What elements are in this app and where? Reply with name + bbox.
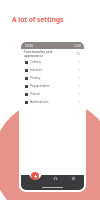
button[interactable]: Internet — [21, 66, 84, 74]
button[interactable]: Cellular — [21, 58, 84, 66]
staticText: LTE 4G — [25, 44, 34, 48]
button[interactable]: Settings — [70, 175, 76, 181]
button[interactable]: Notifications — [21, 98, 84, 106]
staticText: Functionality and appearance — [24, 49, 53, 58]
button[interactable]: Search — [76, 51, 81, 56]
button[interactable]: Add — [31, 172, 39, 180]
staticText: Internet — [30, 68, 42, 72]
staticText: A lot of settings — [12, 15, 64, 24]
staticText: Notifications — [30, 100, 49, 104]
staticText: Virtual — [30, 92, 40, 96]
button[interactable]: Headphones — [52, 175, 58, 181]
button[interactable]: Popup letters — [21, 82, 84, 90]
button[interactable]: Privacy — [21, 74, 84, 82]
staticText: Popup letters — [30, 84, 50, 88]
staticText: Privacy — [30, 76, 41, 80]
staticText: 12:30 — [74, 44, 81, 48]
button[interactable]: Virtual — [21, 90, 84, 98]
staticText: Cellular — [30, 60, 42, 64]
